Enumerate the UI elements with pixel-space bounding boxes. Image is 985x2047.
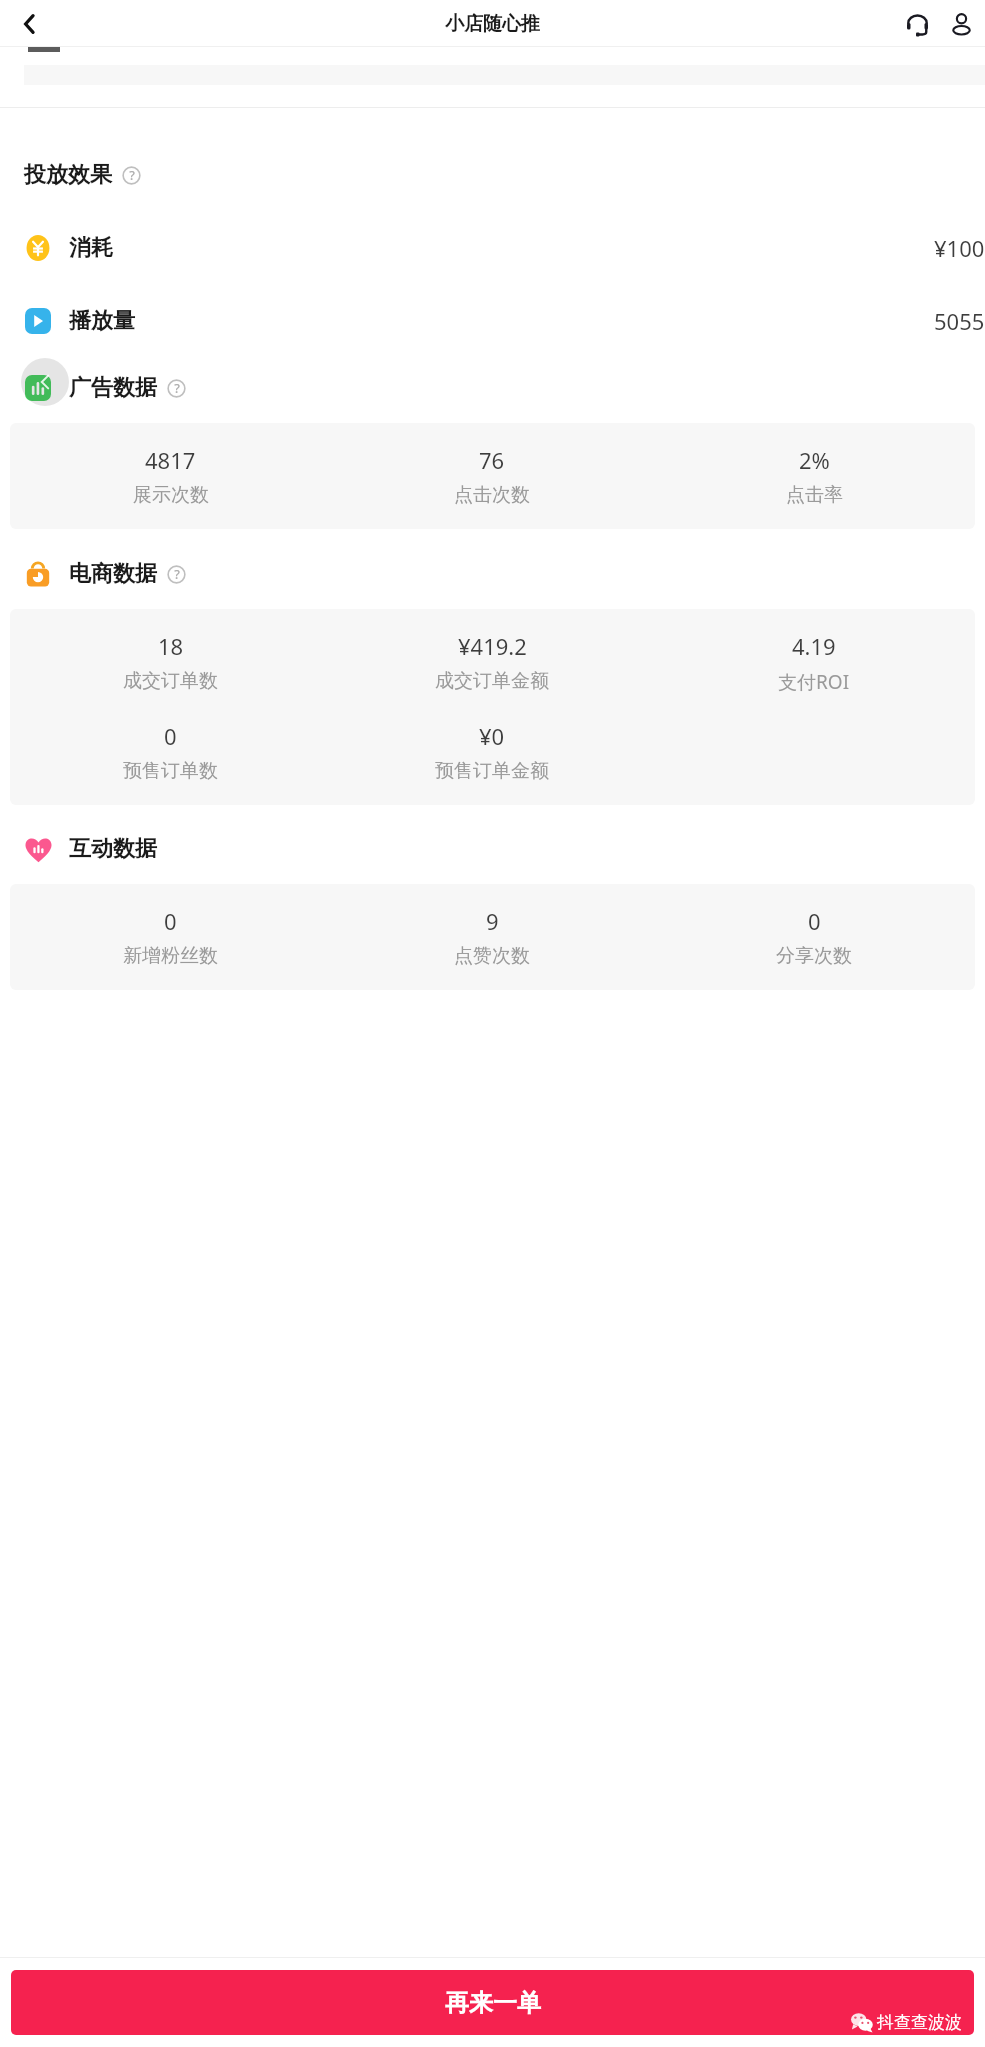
staticText: 预售订单金额 <box>435 759 549 783</box>
staticText: 5055 <box>934 306 985 336</box>
button[interactable]: Back <box>8 2 52 46</box>
button[interactable]: 广告数据 <box>0 374 985 402</box>
staticText: 预售订单数 <box>123 759 218 783</box>
staticText: 9 <box>486 906 499 936</box>
staticText: 消耗 <box>69 234 113 262</box>
staticText: 新增粉丝数 <box>123 944 218 968</box>
staticText: 点击次数 <box>454 483 530 507</box>
staticText: 投放效果 <box>24 161 112 189</box>
staticText: 抖查查波波 <box>877 2012 962 2033</box>
staticText: ? <box>129 167 135 184</box>
staticText: 电商数据 <box>69 560 157 588</box>
button[interactable]: Customer service <box>895 2 939 46</box>
staticText: 成交订单金额 <box>435 669 549 693</box>
staticText: 2% <box>799 445 830 475</box>
staticText: 互动数据 <box>69 835 157 863</box>
staticText: 展示次数 <box>133 483 209 507</box>
staticText: ¥100 <box>934 233 985 263</box>
button[interactable]: 再来一单 <box>11 1970 974 2035</box>
staticText: 0 <box>164 906 177 936</box>
staticText: 4.19 <box>792 631 836 661</box>
staticText: 76 <box>479 445 505 475</box>
staticText: 分享次数 <box>776 944 852 968</box>
staticText: 播放量 <box>69 307 135 335</box>
staticText: 支付ROI <box>778 669 850 695</box>
staticText: 点击率 <box>786 483 843 507</box>
staticText: 广告数据 <box>69 374 157 402</box>
staticText: 4817 <box>145 445 196 475</box>
staticText: 0 <box>164 721 177 751</box>
staticText: ¥0 <box>479 721 505 751</box>
staticText: 成交订单数 <box>123 669 218 693</box>
button[interactable]: Profile <box>939 2 983 46</box>
button[interactable]: Back <box>21 358 69 406</box>
staticText: 再来一单 <box>445 1988 541 2018</box>
button[interactable]: 电商数据 <box>0 560 985 588</box>
staticText: 点赞次数 <box>454 944 530 968</box>
staticText: 小店随心推 <box>445 12 540 36</box>
staticText: ? <box>174 566 180 583</box>
staticText: ¥419.2 <box>458 631 527 661</box>
button[interactable]: 消耗 <box>0 233 985 263</box>
staticText: 18 <box>158 631 184 661</box>
button[interactable]: 播放量 <box>0 306 985 336</box>
staticText: ? <box>174 380 180 397</box>
staticText: 0 <box>808 906 821 936</box>
button[interactable]: 互动数据 <box>0 835 985 863</box>
